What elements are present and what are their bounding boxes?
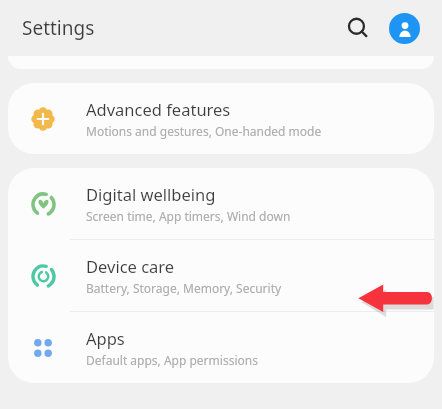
- staticText: Screen time, App timers, Wind down: [86, 208, 291, 224]
- staticText: Settings: [22, 15, 95, 41]
- button[interactable]: Samsung account: [389, 13, 420, 44]
- staticText: Advanced features: [86, 98, 231, 120]
- button[interactable]: Device care: [8, 240, 434, 311]
- staticText: Default apps, App permissions: [86, 352, 258, 368]
- button[interactable]: Search: [341, 11, 375, 45]
- staticText: Device care: [86, 255, 175, 277]
- staticText: Battery, Storage, Memory, Security: [86, 280, 282, 296]
- button[interactable]: Advanced features: [8, 83, 434, 154]
- button[interactable]: Digital wellbeing: [8, 168, 434, 239]
- button[interactable]: Apps: [8, 312, 434, 383]
- staticText: Apps: [86, 327, 125, 349]
- staticText: Motions and gestures, One-handed mode: [86, 123, 322, 139]
- staticText: Digital wellbeing: [86, 183, 216, 205]
